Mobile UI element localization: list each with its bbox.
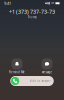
staticText: Thomas [27,15,36,19]
button[interactable]: Message [37,58,57,74]
staticText: LTE [51,1,54,5]
staticText: slide to answer [29,79,50,83]
staticText: 9:41 [4,1,11,6]
staticText: Message [41,70,52,74]
button[interactable]: Remind Me [7,58,27,74]
staticText: +1 (373) 737-73-73 [9,8,55,15]
staticText: Remind Me [9,70,25,74]
